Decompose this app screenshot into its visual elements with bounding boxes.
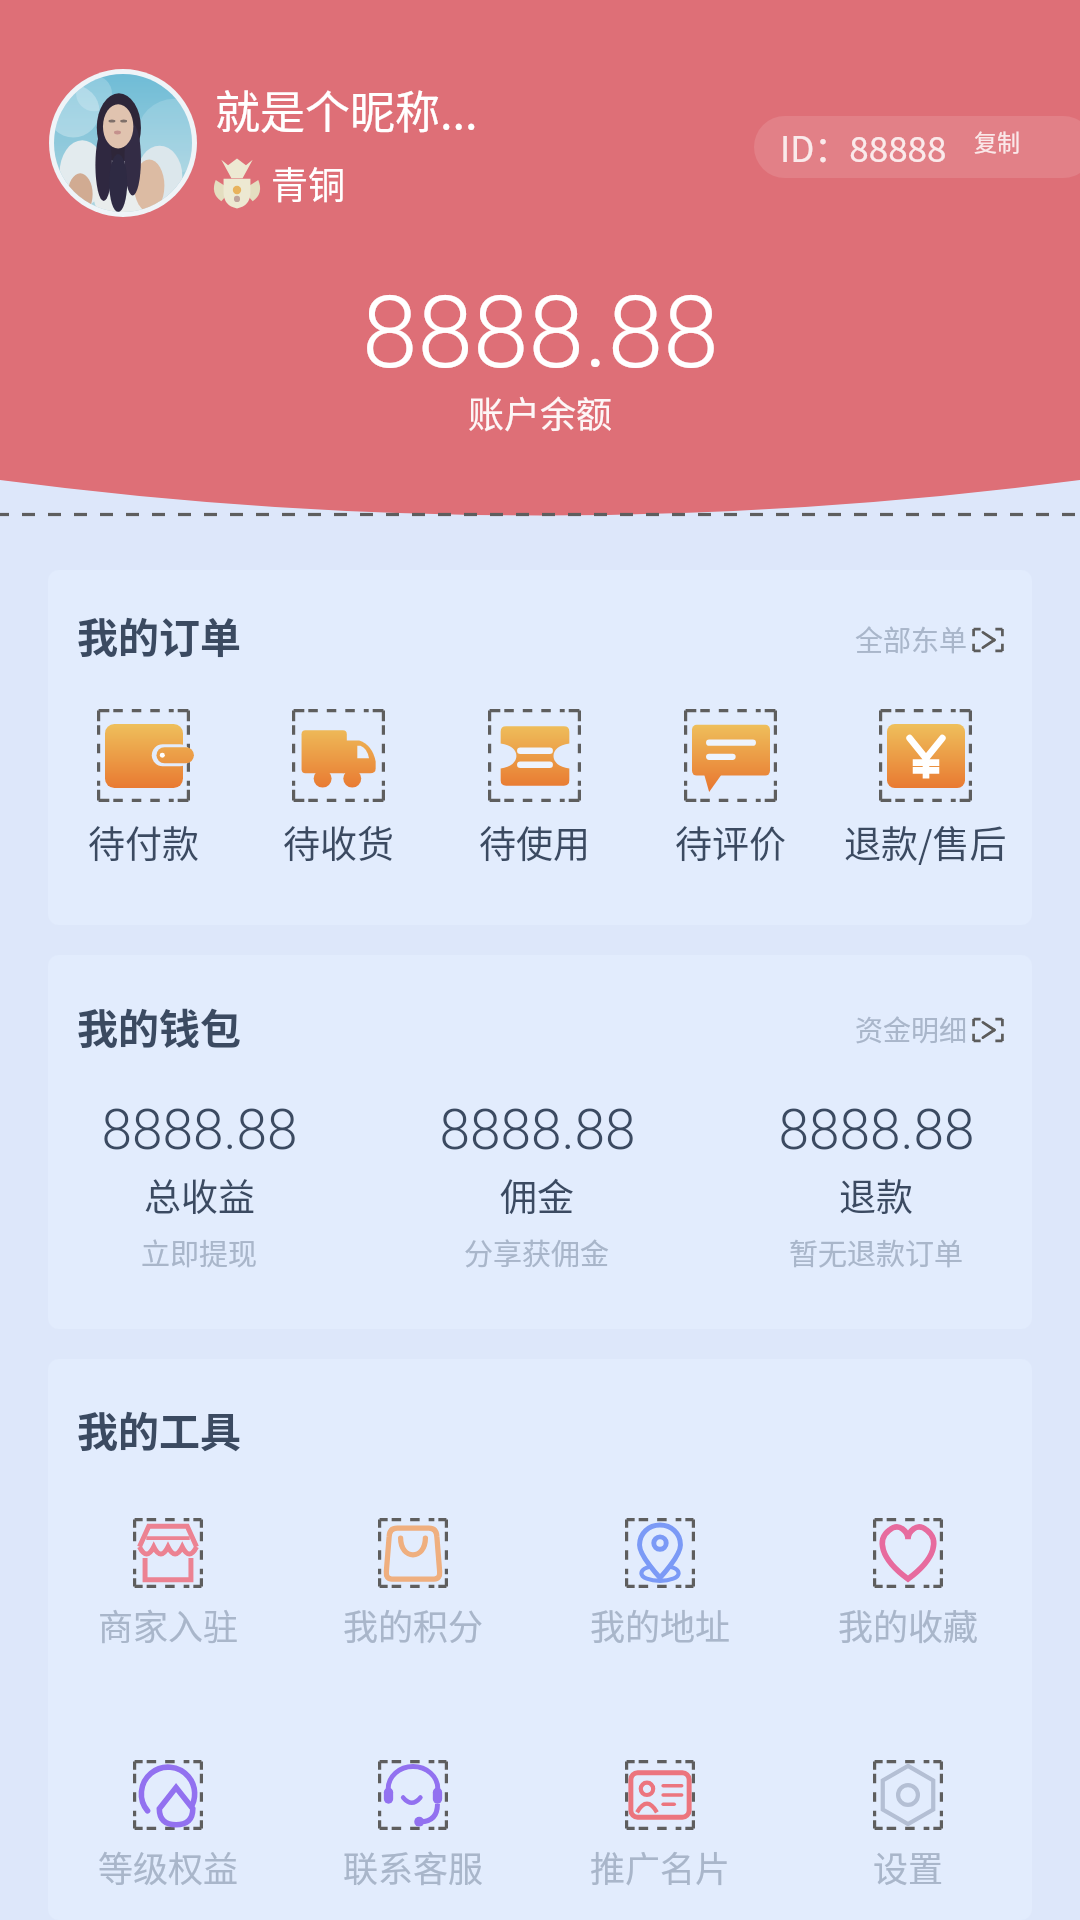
button[interactable]: 8888.88 [368,1098,706,1273]
button[interactable]: 待评价 [633,709,827,869]
staticText: 立即提现 [141,1231,258,1273]
staticText: 佣金 [500,1168,574,1222]
staticText: ID：88888 [780,121,947,172]
staticText: 待收货 [283,815,394,869]
staticText: 设置 [873,1841,944,1892]
button[interactable]: 资金明细 [855,1009,1005,1050]
staticText: 我的订单 [77,605,241,664]
staticText: 我的工具 [77,1399,241,1458]
staticText: 8888.88 [439,1098,636,1162]
staticText: 退款/售后 [844,815,1007,869]
staticText: 推广名片 [590,1841,731,1892]
staticText: 8888.88 [101,1098,298,1162]
button[interactable]: Copy ID [958,116,1048,178]
button[interactable]: Profile avatar [49,69,197,217]
staticText: 我的地址 [590,1599,731,1650]
staticText: 8888.88 [778,1098,975,1162]
button[interactable]: 8888.88 [707,1098,1032,1273]
button[interactable]: 待收货 [241,709,435,869]
button[interactable]: 我的地址 [540,1518,780,1650]
staticText: 我的收藏 [838,1599,979,1650]
staticText: 商家入驻 [98,1599,239,1650]
staticText: 退款 [839,1168,913,1222]
button[interactable]: 我的收藏 [788,1518,1028,1650]
staticText: 联系客服 [343,1841,484,1892]
staticText: 总收益 [144,1168,255,1222]
other: Open [971,1013,1005,1047]
button[interactable]: 等级权益 [48,1760,288,1892]
staticText: 8888.88 [362,274,719,391]
button[interactable]: 待使用 [437,709,631,869]
button[interactable]: 我的积分 [293,1518,533,1650]
button[interactable]: ID：88888 [754,116,1080,178]
staticText: 待评价 [675,815,786,869]
button[interactable]: 全部东单 [855,619,1005,660]
staticText: 复制 [974,124,1020,157]
staticText: 我的钱包 [77,996,241,1055]
button[interactable]: 联系客服 [293,1760,533,1892]
button[interactable]: 待付款 [48,709,240,869]
other: Open [971,623,1005,657]
staticText: 账户余额 [468,386,613,438]
staticText: 待付款 [88,815,199,869]
staticText: 就是个昵称... [215,77,478,142]
staticText: 全部东单 [855,619,968,660]
staticText: 暂无退款订单 [789,1231,964,1273]
button[interactable]: 8888.88 [48,1098,368,1273]
button[interactable]: 推广名片 [540,1760,780,1892]
button[interactable]: 商家入驻 [48,1518,288,1650]
staticText: 青铜 [271,156,345,210]
button[interactable]: 退款/售后 [828,709,1022,869]
staticText: 我的积分 [343,1599,484,1650]
staticText: 等级权益 [98,1841,239,1892]
staticText: 待使用 [479,815,590,869]
button[interactable]: 设置 [788,1760,1028,1892]
staticText: 资金明细 [855,1009,968,1050]
staticText: 分享获佣金 [464,1231,610,1273]
